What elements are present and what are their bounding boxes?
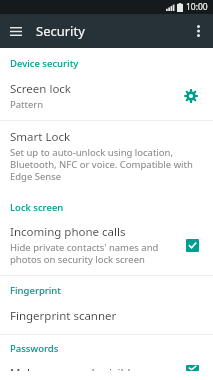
button[interactable]: Screen lock settings <box>177 82 205 110</box>
staticText: Incoming phone calls <box>10 224 126 240</box>
button[interactable]: Toggle checkbox <box>179 365 205 371</box>
button[interactable]: Toggle checkbox <box>179 232 205 258</box>
staticText: Device security <box>10 57 79 70</box>
staticText: Lock screen <box>10 201 64 214</box>
staticText: Pattern <box>10 98 44 111</box>
button[interactable]: Make passwords visible <box>0 358 213 380</box>
staticText: Fingerprint scanner <box>10 308 117 324</box>
button[interactable]: Incoming phone calls <box>0 217 213 275</box>
button[interactable]: Open navigation drawer <box>4 19 28 43</box>
button[interactable]: More options <box>186 19 210 43</box>
button[interactable]: Screen lock <box>0 73 213 120</box>
staticText: Fingerprint <box>10 284 61 297</box>
staticText: Passwords <box>10 342 59 355</box>
staticText: Hide private contacts' names and photos … <box>10 241 175 266</box>
button[interactable]: Smart Lock <box>0 121 213 193</box>
button[interactable]: Fingerprint scanner <box>0 300 213 334</box>
staticText: 10:00 <box>186 1 208 13</box>
staticText: Screen lock <box>10 81 72 97</box>
staticText: Make passwords visible <box>10 365 179 371</box>
staticText: Security <box>36 22 186 40</box>
staticText: Smart Lock <box>10 129 71 145</box>
staticText: Set up to auto-unlock using location, Bl… <box>10 146 201 183</box>
